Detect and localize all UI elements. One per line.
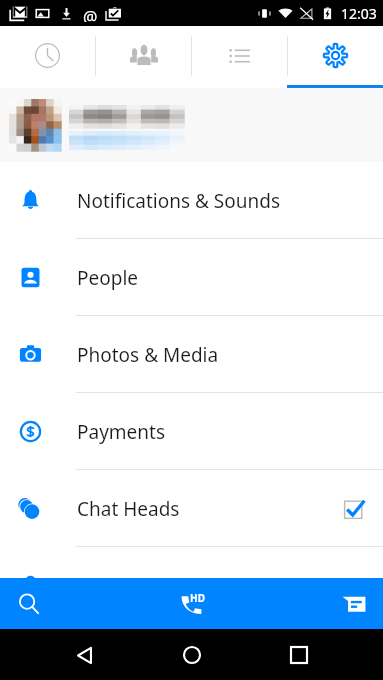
button[interactable]: People bbox=[0, 239, 383, 316]
button[interactable]: Groups bbox=[96, 26, 191, 85]
staticText: Payments bbox=[77, 419, 166, 445]
button[interactable]: Recent bbox=[0, 26, 95, 85]
button[interactable]: Notifications & Sounds bbox=[0, 162, 383, 239]
button[interactable]: Payments bbox=[0, 393, 383, 470]
button[interactable]: Contacts bbox=[0, 547, 383, 624]
staticText: 12:03 bbox=[341, 4, 377, 23]
button[interactable]: Settings bbox=[288, 26, 383, 85]
staticText: Contacts bbox=[77, 573, 155, 599]
staticText: Notifications & Sounds bbox=[77, 188, 280, 214]
staticText: Photos & Media bbox=[77, 342, 219, 368]
button[interactable]: Photos & Media bbox=[0, 316, 383, 393]
button[interactable]: Back bbox=[60, 631, 108, 679]
staticText: @ bbox=[83, 6, 98, 22]
staticText: HD bbox=[190, 591, 205, 605]
button[interactable]: Messages bbox=[255, 578, 383, 629]
button[interactable] bbox=[0, 88, 383, 162]
button[interactable]: Home bbox=[168, 631, 216, 679]
button[interactable]: People list bbox=[192, 26, 287, 85]
staticText: Chat Heads bbox=[77, 496, 180, 522]
button[interactable]: Chat Heads bbox=[0, 470, 383, 547]
button[interactable]: Recents bbox=[275, 631, 323, 679]
staticText: People bbox=[77, 265, 139, 291]
button[interactable]: Calls bbox=[127, 578, 255, 629]
button[interactable]: Search bbox=[0, 578, 127, 629]
